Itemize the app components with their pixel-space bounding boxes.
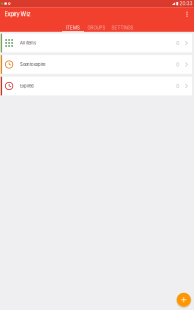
staticText: 20:33 xyxy=(179,1,192,6)
button[interactable]: More options xyxy=(183,9,191,19)
button[interactable]: SETTINGS xyxy=(109,21,136,32)
staticText: GROUPS xyxy=(87,25,105,31)
button[interactable]: Soon to expire xyxy=(0,55,194,74)
staticText: SETTINGS xyxy=(111,25,133,31)
button[interactable]: GROUPS xyxy=(84,21,109,32)
button[interactable]: Expired xyxy=(0,77,194,95)
staticText: Soon to expire xyxy=(20,62,45,67)
button[interactable]: Add item xyxy=(176,292,192,308)
staticText: All items xyxy=(20,40,36,45)
staticText: 0 xyxy=(176,40,179,46)
button[interactable]: All items xyxy=(0,34,194,52)
staticText: 0 xyxy=(176,83,179,89)
staticText: ITEMS xyxy=(66,25,80,31)
staticText: Expiry Wiz xyxy=(4,11,30,18)
button[interactable]: ITEMS xyxy=(62,21,84,32)
staticText: 0 xyxy=(176,61,179,68)
staticText: Expired xyxy=(20,83,34,88)
